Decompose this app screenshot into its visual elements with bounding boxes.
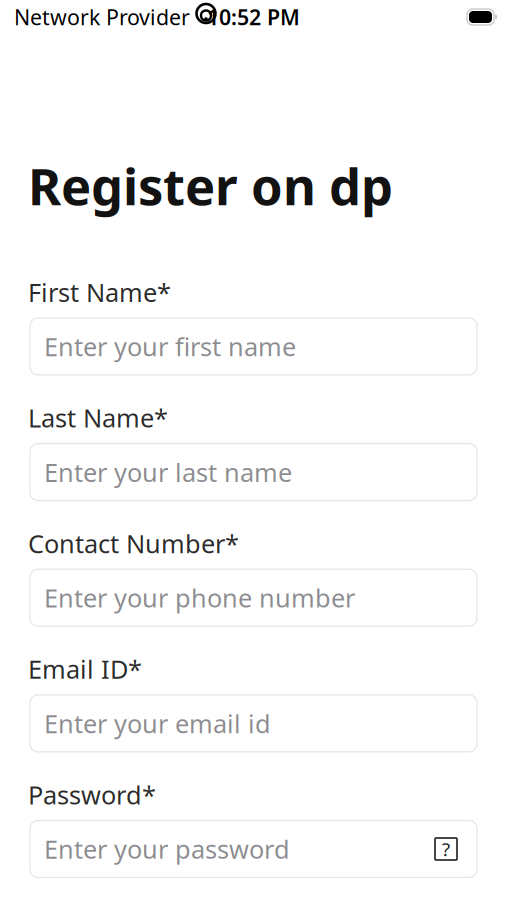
- button[interactable]: Enter your phone number: [30, 569, 477, 626]
- staticText: Enter your password: [44, 832, 290, 866]
- staticText: Password*: [28, 778, 156, 811]
- button[interactable]: Enter your password: [30, 820, 477, 877]
- staticText: Enter your last name: [44, 455, 292, 489]
- staticText: Email ID*: [28, 652, 142, 686]
- staticText: ?: [442, 837, 450, 861]
- staticText: Enter your email id: [44, 706, 271, 740]
- staticText: Enter your phone number: [44, 581, 355, 614]
- button[interactable]: Enter your first name: [30, 318, 477, 375]
- staticText: Contact Number*: [28, 527, 239, 560]
- staticText: Enter your first name: [44, 330, 296, 363]
- staticText: First Name*: [28, 275, 171, 309]
- button[interactable]: Enter your last name: [30, 444, 477, 501]
- staticText: Network Provider: [14, 3, 190, 31]
- button[interactable]: Enter your email id: [30, 695, 477, 752]
- staticText: Register on dp: [28, 152, 393, 219]
- staticText: Last Name*: [28, 401, 168, 434]
- staticText: 10:52 PM: [207, 3, 300, 31]
